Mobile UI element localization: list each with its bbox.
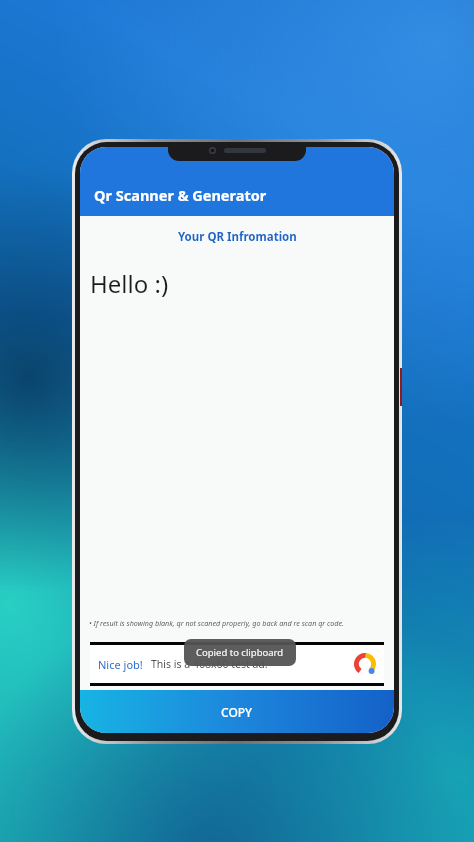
staticText: Qr Scanner & Generator — [94, 185, 267, 205]
staticText: Nice job! — [98, 657, 143, 672]
staticText: COPY — [221, 704, 253, 720]
staticText: • If result is showing blank, qr not sca… — [89, 618, 344, 628]
staticText: Hello :) — [90, 267, 169, 300]
staticText: Your QR Infromation — [178, 229, 297, 245]
staticText: Copied to clipboard — [196, 646, 284, 659]
button[interactable]: Advertisement — [90, 642, 384, 686]
staticText: This is a 468x60 test ad. — [151, 657, 268, 671]
button[interactable]: COPY — [80, 690, 394, 733]
